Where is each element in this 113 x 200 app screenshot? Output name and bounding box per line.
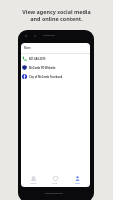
button[interactable]: City of McComb Facebook	[21, 72, 90, 81]
button[interactable]: McComb PD Website	[21, 63, 90, 72]
staticText: Alerts	[52, 182, 58, 185]
staticText: City of McComb Facebook	[29, 75, 63, 79]
staticText: More	[24, 46, 31, 50]
button[interactable]: More	[66, 174, 88, 187]
button[interactable]: Agency	[23, 174, 44, 187]
staticText: Agency	[30, 182, 37, 185]
staticText: More	[75, 182, 80, 185]
staticText: 601-684-3015	[29, 57, 46, 61]
staticText: View agency social media and online cont…	[0, 8, 113, 22]
button[interactable]: Alerts	[44, 174, 66, 187]
staticText: McComb PD Website	[29, 66, 56, 70]
button[interactable]: 601-684-3015	[21, 54, 90, 63]
button[interactable]: More	[21, 43, 90, 53]
